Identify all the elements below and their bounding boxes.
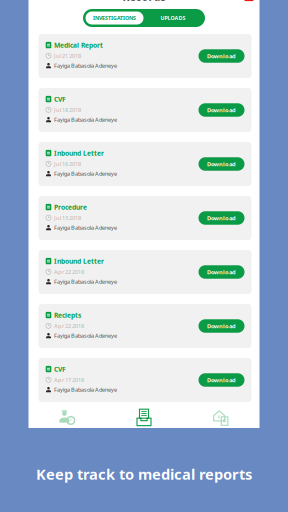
staticText: Inbound Letter (54, 148, 104, 158)
staticText: Fayiga Babasola Adeneye (54, 62, 117, 69)
button[interactable]: Inbound Letter (38, 142, 251, 186)
button[interactable]: CVF (38, 88, 251, 132)
staticText: Fayiga Babasola Adeneye (54, 170, 117, 177)
staticText: Fayiga Babasola Adeneye (54, 116, 117, 123)
button[interactable]: Records (105, 408, 182, 426)
staticText: Fayiga Babasola Adeneye (54, 278, 117, 285)
button[interactable]: Procedure (38, 196, 251, 240)
staticText: Download (207, 268, 236, 276)
staticText: Fayiga Babasola Adeneye (54, 386, 117, 393)
button[interactable]: INVESTIGATIONS (85, 11, 143, 24)
staticText: Download (207, 214, 236, 222)
button[interactable]: Uploads (182, 408, 259, 426)
staticText: Inbound Letter (54, 256, 104, 266)
staticText: Records (122, 0, 165, 4)
staticText: Download (207, 376, 236, 384)
staticText: Apr 17 2018 (54, 376, 84, 384)
staticText: Jul 13 2018 (54, 214, 81, 222)
staticText: Medical Report (54, 40, 103, 50)
staticText: Download (207, 160, 236, 168)
staticText: Jul 18 2018 (54, 106, 81, 114)
staticText: Download (207, 322, 236, 330)
staticText: Keep track to medical reports (36, 464, 252, 484)
button[interactable]: Medical Report (38, 34, 251, 78)
button[interactable]: Inbound Letter (38, 250, 251, 294)
staticText: Fayiga Babasola Adeneye (54, 224, 117, 231)
staticText: CVF (54, 94, 66, 104)
button[interactable]: Reciepts (38, 304, 251, 348)
staticText: Apr 22 2018 (54, 322, 84, 330)
staticText: Fayiga Babasola Adeneye (54, 332, 117, 339)
button[interactable]: Doctors (28, 408, 105, 426)
staticText: Download (207, 106, 236, 114)
staticText: UPLOADS (160, 14, 185, 22)
button[interactable]: UPLOADS (143, 11, 202, 24)
staticText: Reciepts (54, 310, 81, 320)
staticText: Apr 22 2018 (54, 268, 84, 276)
button[interactable]: CVF (38, 358, 251, 402)
staticText: Download (207, 52, 236, 60)
staticText: Jul 21 2018 (54, 52, 81, 60)
staticText: CVF (54, 364, 66, 374)
staticText: Jul 16 2018 (54, 160, 81, 168)
staticText: INVESTIGATIONS (93, 14, 136, 22)
staticText: Procedure (54, 202, 87, 212)
